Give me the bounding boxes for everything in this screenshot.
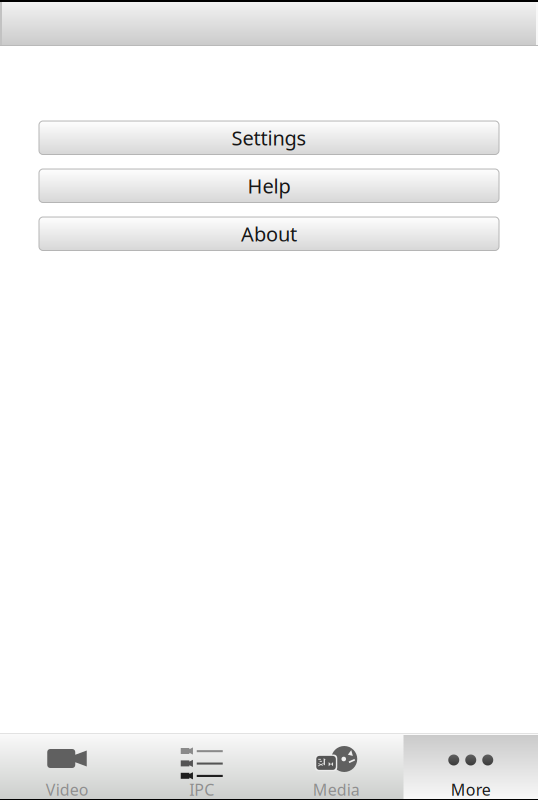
staticText: More [451, 779, 491, 800]
button[interactable]: Video [0, 734, 134, 799]
button[interactable]: About [39, 217, 499, 250]
staticText: Media [313, 779, 360, 800]
staticText: Video [46, 779, 89, 800]
button[interactable]: Help [39, 169, 499, 202]
button[interactable]: More [403, 734, 538, 799]
staticText: About [241, 220, 297, 247]
staticText: IPC [189, 779, 214, 800]
staticText: Help [247, 172, 290, 199]
button[interactable]: Settings [39, 121, 499, 154]
button[interactable]: Media [269, 734, 403, 799]
staticText: Settings [231, 124, 306, 151]
button[interactable]: IPC [134, 734, 269, 799]
